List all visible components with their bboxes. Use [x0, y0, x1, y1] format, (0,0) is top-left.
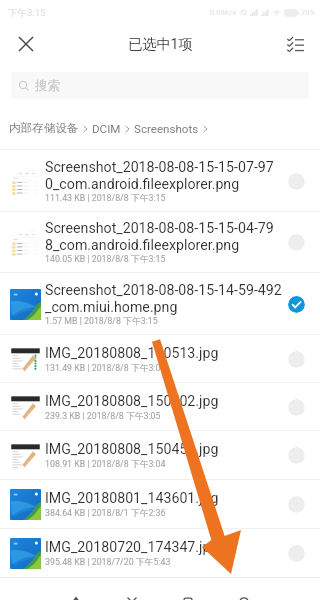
- button[interactable]: IMG_20180720_174347.jpg: [0, 529, 320, 578]
- staticText: 108.91 KB | 2018/8/8 下午3:04: [45, 459, 166, 470]
- staticText: 384.64 KB | 2018/8/1 下午2:36: [45, 508, 166, 519]
- staticText: IMG_20180808_150450.jpg: [45, 441, 219, 458]
- staticText: IMG_20180801_143601.jpg: [45, 490, 219, 507]
- button[interactable]: Screenshots: [134, 122, 199, 136]
- staticText: DCIM: [92, 122, 121, 136]
- staticText: IMG_20180720_174347.jpg: [45, 539, 219, 556]
- staticText: 已选中1项: [128, 35, 193, 53]
- staticText: IMG_20180808_150513.jpg: [45, 345, 219, 362]
- staticText: 140.05 KB | 2018/8/8 下午3:15: [45, 254, 166, 265]
- staticText: 70%: [301, 8, 315, 17]
- staticText: Screenshot_2018-08-08-15-14-59-492 _com.…: [45, 282, 282, 315]
- button[interactable]: [288, 173, 305, 190]
- button[interactable]: [288, 496, 305, 513]
- button[interactable]: [288, 296, 305, 313]
- button[interactable]: Select all: [271, 25, 320, 62]
- button[interactable]: Delete: [104, 578, 160, 600]
- button[interactable]: [288, 351, 305, 368]
- button[interactable]: Screenshot_2018-08-08-15-15-04-79 8_com.…: [0, 212, 320, 273]
- button[interactable]: [288, 399, 305, 416]
- staticText: 239.3 KB | 2018/8/8 下午3:05: [45, 411, 161, 422]
- button[interactable]: Copy: [160, 578, 216, 600]
- button[interactable]: [288, 234, 305, 251]
- staticText: Screenshots: [134, 122, 199, 136]
- staticText: Screenshot_2018-08-08-15-15-04-79 8_com.…: [45, 220, 274, 253]
- button[interactable]: Share: [48, 578, 104, 600]
- button[interactable]: IMG_20180808_150513.jpg: [0, 335, 320, 383]
- staticText: 395.48 KB | 2018/7/20 下午5:43: [45, 557, 171, 568]
- button[interactable]: [288, 545, 305, 562]
- staticText: 内部存储设备: [9, 121, 79, 136]
- staticText: 111.43 KB | 2018/8/8 下午3:15: [45, 193, 166, 204]
- button[interactable]: IMG_20180808_150450.jpg: [0, 431, 320, 480]
- button[interactable]: IMG_20180801_143601.jpg: [0, 480, 320, 529]
- button[interactable]: IMG_20180808_150502.jpg: [0, 383, 320, 431]
- staticText: IMG_20180808_150502.jpg: [45, 393, 219, 410]
- staticText: 搜索: [35, 78, 60, 94]
- staticText: 131.49 KB | 2018/8/8 下午3:05: [45, 363, 166, 374]
- button[interactable]: DCIM: [92, 122, 121, 136]
- button[interactable]: More: [216, 578, 272, 600]
- staticText: 下午3:15: [8, 7, 46, 19]
- staticText: 1.57 MB | 2018/8/8 下午3:15: [45, 316, 158, 327]
- button[interactable]: 搜索: [11, 72, 309, 99]
- staticText: Screenshot_2018-08-08-15-15-07-97 0_com.…: [45, 159, 274, 192]
- button[interactable]: [288, 447, 305, 464]
- button[interactable]: Screenshot_2018-08-08-15-15-07-97 0_com.…: [0, 150, 320, 212]
- button[interactable]: 内部存储设备: [9, 121, 79, 136]
- button[interactable]: Close: [0, 25, 52, 62]
- button[interactable]: Screenshot_2018-08-08-15-14-59-492 _com.…: [0, 273, 320, 335]
- staticText: 0.06K/s: [210, 8, 237, 17]
